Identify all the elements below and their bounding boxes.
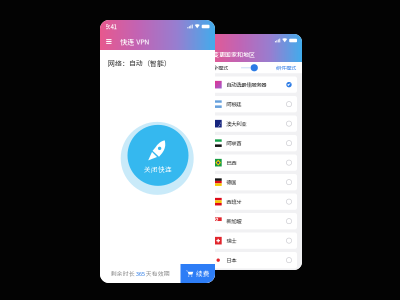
button[interactable]: 阿根廷 xyxy=(212,96,297,112)
button[interactable]: 组件模式 xyxy=(276,64,296,72)
staticText: 自动选最佳服务器 xyxy=(226,81,266,89)
staticText: 阿联酋 xyxy=(226,139,241,147)
staticText: 续费 xyxy=(196,269,210,278)
button[interactable]: 关闭快连 xyxy=(120,116,196,194)
staticText: 阿根廷 xyxy=(226,100,241,108)
staticText: 澳大利亚 xyxy=(226,120,246,128)
staticText: 日本 xyxy=(226,256,236,264)
staticText: 关闭快连 xyxy=(144,164,172,174)
button[interactable]: 续费 xyxy=(180,264,215,283)
button[interactable]: 西班牙 xyxy=(212,193,297,210)
button[interactable]: 阿联酋 xyxy=(212,135,297,151)
staticText: 天有效期 xyxy=(146,269,170,278)
button[interactable]: 日本 xyxy=(212,252,297,268)
staticText: 365 xyxy=(135,269,146,278)
button[interactable]: 德国 xyxy=(212,174,297,190)
staticText: 德国 xyxy=(226,178,236,186)
button[interactable]: 澳大利亚 xyxy=(212,115,297,132)
button[interactable]: 新加坡 xyxy=(212,213,297,229)
button[interactable]: 自动选最佳服务器 xyxy=(212,76,297,93)
button[interactable]: 菜单 xyxy=(105,38,113,45)
staticText: 组件模式 xyxy=(276,64,296,72)
staticText: 新加坡 xyxy=(226,217,241,225)
button[interactable]: 巴西 xyxy=(212,154,297,171)
staticText: 西班牙 xyxy=(226,198,241,206)
staticText: 9:41 xyxy=(105,22,116,31)
button[interactable]: 全模式 xyxy=(213,64,228,72)
staticText: 快连 VPN xyxy=(120,36,149,46)
staticText: 网络：自动（智能） xyxy=(108,58,171,68)
staticText: 剩余时长 xyxy=(111,269,135,278)
staticText: 全模式 xyxy=(213,64,228,72)
staticText: 变更国家和地区 xyxy=(213,50,255,59)
staticText: 瑞士 xyxy=(226,237,236,245)
button[interactable]: 瑞士 xyxy=(212,232,297,249)
staticText: 巴西 xyxy=(226,159,236,167)
